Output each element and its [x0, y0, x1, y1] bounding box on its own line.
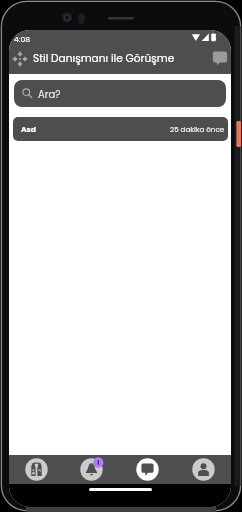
staticText: Ara? — [38, 87, 61, 101]
button[interactable]: Ara? — [14, 80, 226, 107]
staticText: 25 dakika önce — [170, 124, 225, 134]
staticText: Asd — [21, 124, 36, 135]
button[interactable]: Notifications — [64, 455, 119, 484]
button[interactable]: Asd — [13, 117, 228, 141]
button[interactable]: Chat — [119, 455, 175, 484]
button[interactable]: Style assistant — [10, 48, 30, 70]
button[interactable]: Messages — [209, 47, 231, 69]
staticText: Stil Danışmanı ile Görüşme — [33, 51, 175, 66]
staticText: 4:08 — [14, 34, 30, 45]
button[interactable]: Wardrobe — [9, 455, 64, 484]
button[interactable]: Profile — [175, 455, 231, 484]
